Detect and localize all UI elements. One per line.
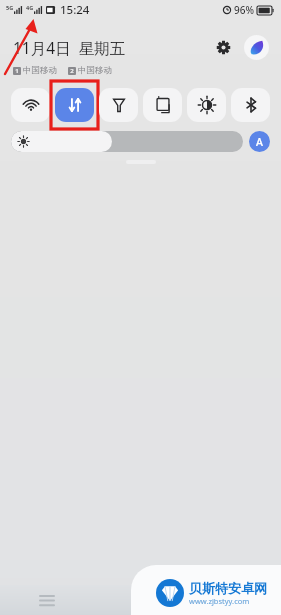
staticText: 2 bbox=[70, 67, 74, 75]
staticText: 中国移动 bbox=[78, 65, 112, 76]
staticText: 96% bbox=[234, 3, 254, 17]
button[interactable]: Screenshot bbox=[143, 88, 182, 122]
button[interactable]: Recents bbox=[29, 586, 65, 614]
staticText: 贝斯特安卓网 bbox=[189, 580, 267, 596]
staticText: 中国移动 bbox=[23, 65, 57, 76]
button[interactable]: Settings bbox=[210, 34, 236, 60]
button[interactable]: Bluetooth bbox=[231, 88, 270, 122]
button[interactable]: Flashlight bbox=[99, 88, 138, 122]
staticText: 11月4日 星期五 bbox=[13, 37, 126, 58]
button[interactable]: Eye comfort bbox=[187, 88, 226, 122]
staticText: 4G bbox=[26, 4, 34, 11]
button[interactable]: Brightness bbox=[11, 131, 243, 152]
button[interactable]: Mobile data bbox=[55, 88, 94, 122]
button[interactable]: Wi-Fi bbox=[11, 88, 50, 122]
staticText: A bbox=[256, 135, 263, 149]
button[interactable]: Home bbox=[123, 586, 159, 614]
button[interactable]: Back bbox=[216, 586, 252, 614]
staticText: www.zjbstyy.com bbox=[189, 596, 250, 606]
button[interactable]: User profile bbox=[244, 35, 269, 60]
staticText: 1 bbox=[15, 67, 19, 75]
staticText: 5G bbox=[6, 4, 14, 11]
staticText: 15:24 bbox=[60, 2, 90, 18]
button[interactable]: Auto brightness bbox=[249, 131, 270, 152]
